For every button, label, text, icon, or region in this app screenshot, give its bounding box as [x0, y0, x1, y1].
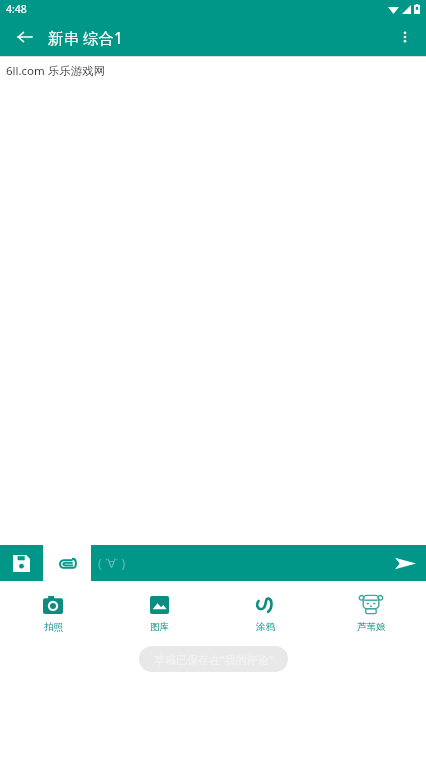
button[interactable]: ( ˙∀˙ ) — [91, 545, 384, 581]
button[interactable]: Gallery — [106, 588, 212, 637]
staticText: 4:48 — [6, 2, 27, 16]
button[interactable]: Back — [10, 22, 40, 52]
staticText: 芦苇娘 — [357, 621, 386, 633]
button[interactable]: Save draft — [0, 545, 43, 581]
button[interactable]: Send — [384, 545, 426, 581]
staticText: 图库 — [150, 621, 169, 633]
staticText: 6ll.com 乐乐游戏网 — [6, 63, 106, 79]
button[interactable]: Sticker — [318, 588, 424, 637]
staticText: 新串 综合1 — [48, 27, 123, 48]
button[interactable]: Attachments — [43, 545, 91, 581]
button[interactable]: Doodle — [212, 588, 318, 637]
staticText: 涂鸦 — [256, 621, 275, 633]
staticText: 草稿已保存在"我的评论" — [154, 652, 273, 667]
staticText: 拍照 — [44, 621, 63, 633]
staticText: ( ˙∀˙ ) — [98, 555, 126, 572]
button[interactable]: More options — [390, 22, 420, 52]
button[interactable]: Take photo — [0, 588, 106, 637]
